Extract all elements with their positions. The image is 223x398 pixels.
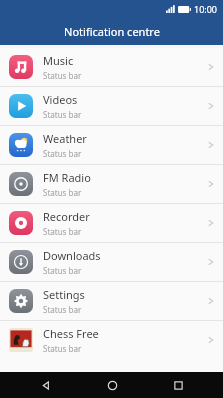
staticText: Status bar [43, 343, 82, 354]
button[interactable]: Home [90, 372, 134, 398]
button[interactable]: FM Radio [0, 165, 223, 204]
button[interactable]: Recorder [0, 204, 223, 243]
button[interactable]: Weather [0, 126, 223, 165]
staticText: Status bar [43, 187, 82, 198]
staticText: Notification centre [64, 24, 160, 39]
staticText: Settings [43, 287, 85, 302]
button[interactable]: Back [23, 372, 67, 398]
staticText: Status bar [43, 70, 82, 81]
staticText: 10:00 [194, 3, 218, 15]
staticText: Music [43, 53, 74, 68]
staticText: Status bar [43, 226, 82, 237]
staticText: Recorder [43, 209, 90, 224]
staticText: FM Radio [43, 170, 91, 185]
staticText: Status bar [43, 109, 82, 120]
button[interactable]: Downloads [0, 243, 223, 282]
button[interactable]: Music [0, 48, 223, 87]
button[interactable]: Recent apps [156, 372, 200, 398]
staticText: Chess Free [43, 326, 99, 341]
staticText: Status bar [43, 148, 82, 159]
staticText: Weather [43, 131, 87, 146]
staticText: Downloads [43, 248, 101, 263]
button[interactable]: Chess Free [0, 321, 223, 359]
staticText: Status bar [43, 265, 82, 276]
button[interactable]: Videos [0, 87, 223, 126]
button[interactable]: Settings [0, 282, 223, 321]
staticText: Status bar [43, 304, 82, 315]
staticText: Videos [43, 92, 78, 107]
